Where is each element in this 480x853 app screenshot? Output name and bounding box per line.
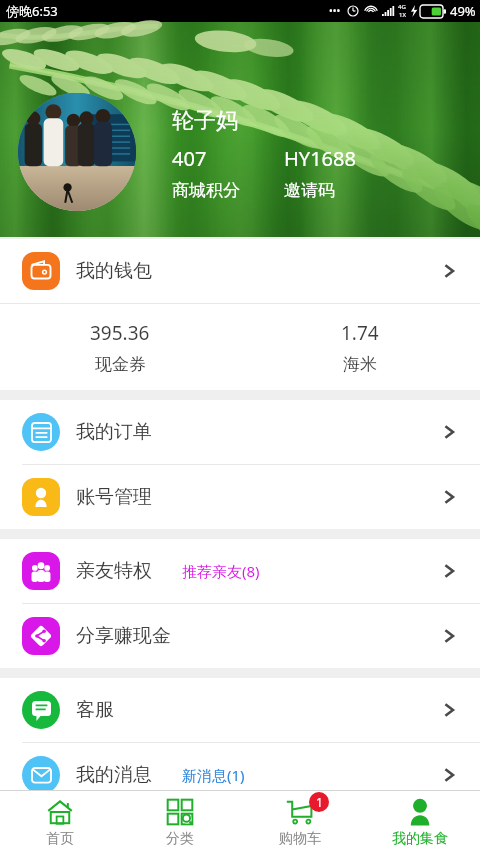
staticText: HY1688 [284, 145, 356, 172]
staticText: 分类 [166, 830, 194, 848]
staticText: 49% [450, 2, 476, 20]
staticText: 购物车 [279, 830, 321, 848]
staticText: 客服 [76, 698, 114, 722]
staticText: 395.36 [90, 320, 150, 346]
staticText: 邀请码 [284, 180, 335, 201]
button[interactable]: 395.36 [0, 320, 240, 375]
button[interactable]: Profile photo [18, 93, 136, 211]
staticText: 推荐亲友(8) [182, 561, 260, 581]
button[interactable]: 账号管理 [0, 465, 480, 529]
button[interactable]: 分类 [120, 791, 240, 853]
button[interactable]: 客服 [0, 678, 480, 742]
staticText: 轮子妈 [172, 107, 238, 135]
staticText: 我的钱包 [76, 259, 152, 283]
staticText: 1.74 [341, 320, 379, 346]
staticText: 407 [172, 145, 284, 172]
staticText: 1 [316, 794, 323, 810]
staticText: 账号管理 [76, 485, 152, 509]
staticText: 我的消息 [76, 763, 152, 787]
staticText: 首页 [46, 830, 74, 848]
button[interactable]: 1.74 [240, 320, 480, 375]
staticText: 新消息(1) [182, 765, 245, 785]
button[interactable]: 我的消息 [0, 743, 480, 807]
button[interactable]: 1 [240, 791, 360, 853]
staticText: 商城积分 [172, 180, 284, 201]
button[interactable]: 我的集食 [360, 791, 480, 853]
staticText: 傍晚6:53 [6, 2, 58, 20]
staticText: 分享赚现金 [76, 624, 171, 648]
button[interactable]: 我的订单 [0, 400, 480, 464]
button[interactable]: 亲友特权 [0, 539, 480, 603]
button[interactable]: 首页 [0, 791, 120, 853]
staticText: 现金券 [95, 354, 146, 375]
button[interactable]: 我的钱包 [0, 239, 480, 303]
staticText: 亲友特权 [76, 559, 152, 583]
staticText: ••• [329, 4, 341, 18]
staticText: 1X [399, 11, 406, 19]
staticText: 我的订单 [76, 420, 152, 444]
staticText: 4G [398, 3, 406, 11]
staticText: 我的集食 [392, 830, 448, 848]
button[interactable]: 分享赚现金 [0, 604, 480, 668]
staticText: 海米 [343, 354, 377, 375]
